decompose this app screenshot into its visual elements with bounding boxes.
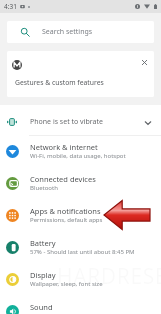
staticText: Display	[30, 270, 56, 280]
button[interactable]: Battery	[0, 231, 161, 263]
staticText: Gestures & custom features	[15, 78, 104, 87]
staticText: Network & internet	[30, 142, 98, 152]
staticText: Connected devices	[30, 174, 96, 184]
button[interactable]: Gestures & custom features	[7, 51, 154, 97]
staticText: 57% - Should last until about 8:45 PM	[30, 248, 135, 256]
staticText: Search settings	[42, 27, 93, 37]
button[interactable]: Connected devices	[0, 167, 161, 199]
staticText: Wallpaper, sleep, font size	[30, 280, 103, 288]
staticText: Permissions, default apps	[30, 216, 103, 224]
staticText: Wi-Fi, mobile, data usage, hotspot	[30, 152, 126, 160]
button[interactable]: Phone is set to vibrate	[0, 105, 161, 135]
staticText: Bluetooth	[30, 184, 58, 192]
button[interactable]: Dismiss	[137, 55, 151, 69]
staticText: HARDRESET	[57, 262, 161, 291]
button[interactable]: Network & internet	[0, 135, 161, 167]
button[interactable]: Display	[0, 263, 161, 295]
button[interactable]: Apps & notifications	[0, 199, 161, 231]
button[interactable]: Sound	[0, 295, 161, 314]
staticText: Apps & notifications	[30, 206, 101, 216]
staticText: Battery	[30, 238, 56, 248]
staticText: Phone is set to vibrate	[30, 117, 103, 127]
staticText: 4:31	[4, 2, 17, 11]
button[interactable]: Search settings	[7, 21, 154, 43]
staticText: Sound	[30, 302, 53, 312]
